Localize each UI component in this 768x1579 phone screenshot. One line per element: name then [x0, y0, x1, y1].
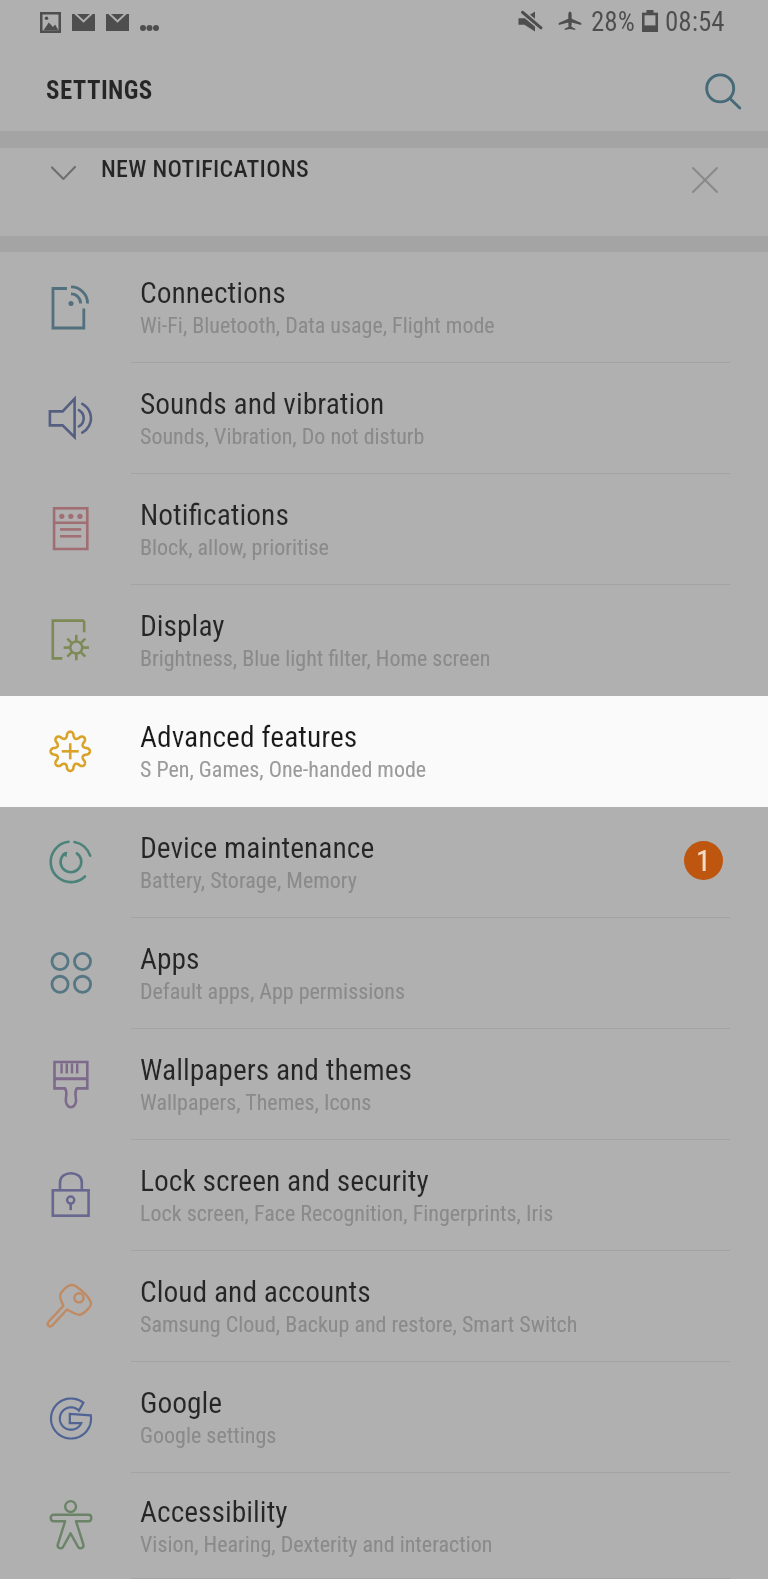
- button[interactable]: Close: [673, 148, 737, 212]
- staticText: Notifications: [140, 498, 289, 533]
- staticText: Display: [140, 609, 225, 644]
- staticText: Brightness, Blue light filter, Home scre…: [140, 646, 491, 672]
- button[interactable]: Lock screen and security: [0, 1140, 768, 1251]
- staticText: Sounds and vibration: [140, 387, 385, 422]
- staticText: Advanced features: [140, 720, 358, 755]
- button[interactable]: Notifications: [0, 474, 768, 585]
- staticText: Device maintenance: [140, 831, 375, 866]
- staticText: Wallpapers, Themes, Icons: [140, 1090, 372, 1116]
- staticText: Accessibility: [140, 1495, 288, 1530]
- staticText: Samsung Cloud, Backup and restore, Smart…: [140, 1312, 578, 1338]
- staticText: Google settings: [140, 1423, 277, 1449]
- staticText: Lock screen, Face Recognition, Fingerpri…: [140, 1201, 554, 1227]
- staticText: Wi-Fi, Bluetooth, Data usage, Flight mod…: [140, 313, 495, 339]
- staticText: Block, allow, prioritise: [140, 535, 329, 561]
- button[interactable]: NEW NOTIFICATIONS: [0, 148, 768, 236]
- staticText: SETTINGS: [46, 76, 153, 105]
- staticText: Connections: [140, 276, 286, 311]
- staticText: Google: [140, 1386, 223, 1421]
- button[interactable]: Apps: [0, 918, 768, 1029]
- staticText: Sounds, Vibration, Do not disturb: [140, 424, 425, 450]
- staticText: 08:54: [665, 6, 725, 38]
- button[interactable]: Connections: [0, 252, 768, 363]
- staticText: Default apps, App permissions: [140, 979, 406, 1005]
- staticText: Wallpapers and themes: [140, 1053, 413, 1088]
- button[interactable]: Display: [0, 585, 768, 696]
- button[interactable]: Accessibility: [0, 1473, 768, 1579]
- button[interactable]: Search: [690, 60, 758, 128]
- staticText: Cloud and accounts: [140, 1275, 371, 1310]
- staticText: Lock screen and security: [140, 1164, 429, 1199]
- staticText: Apps: [140, 942, 200, 977]
- staticText: Battery, Storage, Memory: [140, 868, 357, 894]
- button[interactable]: Device maintenance: [0, 807, 768, 918]
- staticText: S Pen, Games, One-handed mode: [140, 757, 427, 783]
- button[interactable]: Advanced features: [0, 696, 768, 807]
- button[interactable]: Wallpapers and themes: [0, 1029, 768, 1140]
- staticText: 1: [696, 844, 711, 878]
- staticText: Vision, Hearing, Dexterity and interacti…: [140, 1532, 493, 1558]
- staticText: NEW NOTIFICATIONS: [101, 155, 310, 183]
- button[interactable]: Cloud and accounts: [0, 1251, 768, 1362]
- button[interactable]: Sounds and vibration: [0, 363, 768, 474]
- button[interactable]: Google: [0, 1362, 768, 1473]
- staticText: 28%: [591, 6, 635, 38]
